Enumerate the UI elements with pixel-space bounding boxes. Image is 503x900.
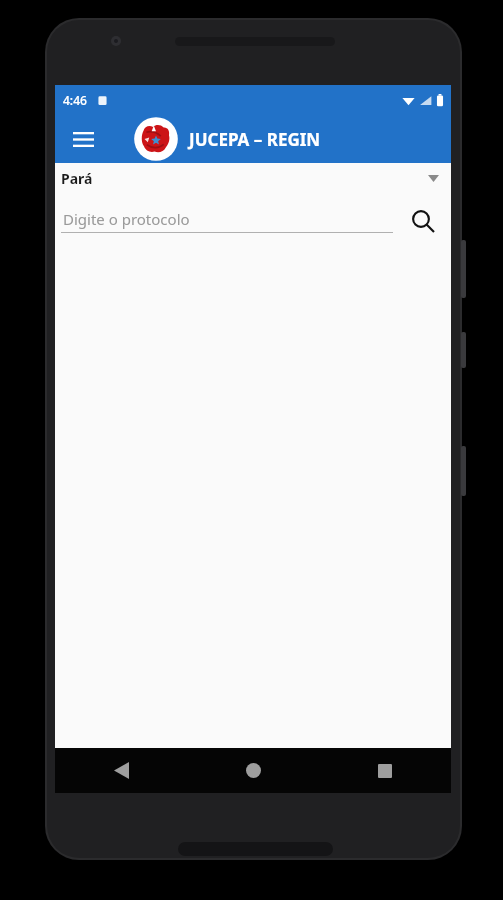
button[interactable]: Recent apps — [319, 748, 451, 793]
staticText: Pará — [61, 169, 93, 188]
button[interactable]: Back — [55, 748, 187, 793]
button[interactable]: Home — [187, 748, 319, 793]
staticText: 4:46 — [63, 92, 87, 108]
staticText: Digite o protocolo — [63, 209, 190, 229]
button[interactable]: Open navigation menu — [64, 120, 102, 158]
button[interactable]: Pará — [55, 163, 451, 193]
staticText: JUCEPA – REGIN — [189, 128, 321, 151]
button[interactable]: Search — [403, 201, 443, 241]
button[interactable]: Digite o protocolo — [61, 209, 393, 233]
